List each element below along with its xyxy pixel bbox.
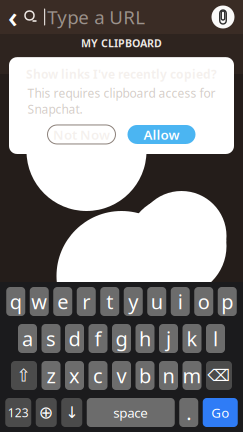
- staticText: l: [213, 325, 218, 352]
- staticText: 123: [8, 404, 29, 420]
- button[interactable]: n: [159, 361, 178, 390]
- staticText: ⊕: [39, 403, 54, 422]
- button[interactable]: Dictation: [61, 398, 82, 427]
- staticText: x: [69, 362, 80, 389]
- staticText: MY CLIPBOARD: [81, 36, 162, 50]
- staticText: Not Now: [53, 126, 110, 143]
- button[interactable]: p: [218, 287, 237, 316]
- button[interactable]: Attachments: [207, 1, 239, 33]
- staticText: Allow: [143, 126, 179, 143]
- button[interactable]: h: [135, 324, 154, 353]
- staticText: a: [22, 325, 33, 352]
- staticText: d: [68, 325, 80, 352]
- button[interactable]: d: [65, 324, 84, 353]
- staticText: space: [113, 404, 148, 421]
- staticText: i: [178, 288, 183, 315]
- button[interactable]: Next keyboard: [36, 398, 57, 427]
- staticText: ⇧: [16, 366, 31, 385]
- staticText: j: [166, 325, 171, 352]
- staticText: n: [162, 362, 174, 389]
- button[interactable]: Allow: [127, 125, 195, 144]
- staticText: b: [139, 362, 151, 389]
- button[interactable]: o: [194, 287, 213, 316]
- button[interactable]: .: [179, 398, 198, 427]
- button[interactable]: r: [77, 287, 96, 316]
- staticText: Go: [211, 404, 229, 421]
- button[interactable]: w: [30, 287, 49, 316]
- button[interactable]: 123: [5, 398, 31, 427]
- staticText: k: [186, 325, 197, 352]
- staticText: g: [115, 325, 127, 352]
- staticText: c: [93, 362, 103, 389]
- button[interactable]: l: [206, 324, 225, 353]
- staticText: y: [128, 288, 138, 315]
- staticText: ‹: [8, 0, 18, 36]
- staticText: ↓: [65, 403, 78, 422]
- staticText: q: [10, 288, 22, 315]
- staticText: p: [221, 288, 233, 315]
- staticText: w: [31, 288, 47, 315]
- button[interactable]: t: [100, 287, 119, 316]
- button[interactable]: Back: [4, 1, 22, 33]
- button[interactable]: Delete: [206, 361, 232, 390]
- staticText: r: [82, 288, 90, 315]
- button[interactable]: c: [88, 361, 107, 390]
- button[interactable]: u: [147, 287, 166, 316]
- staticText: e: [57, 288, 68, 315]
- staticText: This requires clipboard access for Snapc…: [27, 85, 215, 117]
- staticText: s: [46, 325, 56, 352]
- staticText: .: [186, 399, 191, 426]
- button[interactable]: z: [41, 361, 60, 390]
- staticText: Show links I've recently copied?: [26, 66, 217, 82]
- button[interactable]: j: [159, 324, 178, 353]
- staticText: o: [198, 288, 210, 315]
- staticText: v: [116, 362, 126, 389]
- button[interactable]: a: [18, 324, 37, 353]
- button[interactable]: Not Now: [47, 125, 115, 144]
- button[interactable]: Go: [203, 398, 238, 427]
- button[interactable]: k: [182, 324, 201, 353]
- button[interactable]: f: [88, 324, 107, 353]
- staticText: u: [151, 288, 163, 315]
- button[interactable]: space: [87, 398, 175, 427]
- button[interactable]: v: [112, 361, 131, 390]
- button[interactable]: g: [112, 324, 131, 353]
- staticText: t: [106, 288, 113, 315]
- button[interactable]: e: [53, 287, 72, 316]
- button[interactable]: Shift: [11, 361, 37, 390]
- staticText: f: [94, 325, 101, 352]
- button[interactable]: y: [124, 287, 143, 316]
- button[interactable]: m: [182, 361, 201, 390]
- staticText: h: [139, 325, 151, 352]
- button[interactable]: i: [171, 287, 190, 316]
- button[interactable]: s: [41, 324, 60, 353]
- staticText: m: [182, 362, 201, 389]
- button[interactable]: q: [6, 287, 25, 316]
- staticText: z: [46, 362, 55, 389]
- staticText: Type a URL: [47, 5, 145, 29]
- button[interactable]: Search: [22, 1, 40, 33]
- staticText: ⌫: [207, 366, 230, 385]
- button[interactable]: b: [135, 361, 154, 390]
- button[interactable]: x: [65, 361, 84, 390]
